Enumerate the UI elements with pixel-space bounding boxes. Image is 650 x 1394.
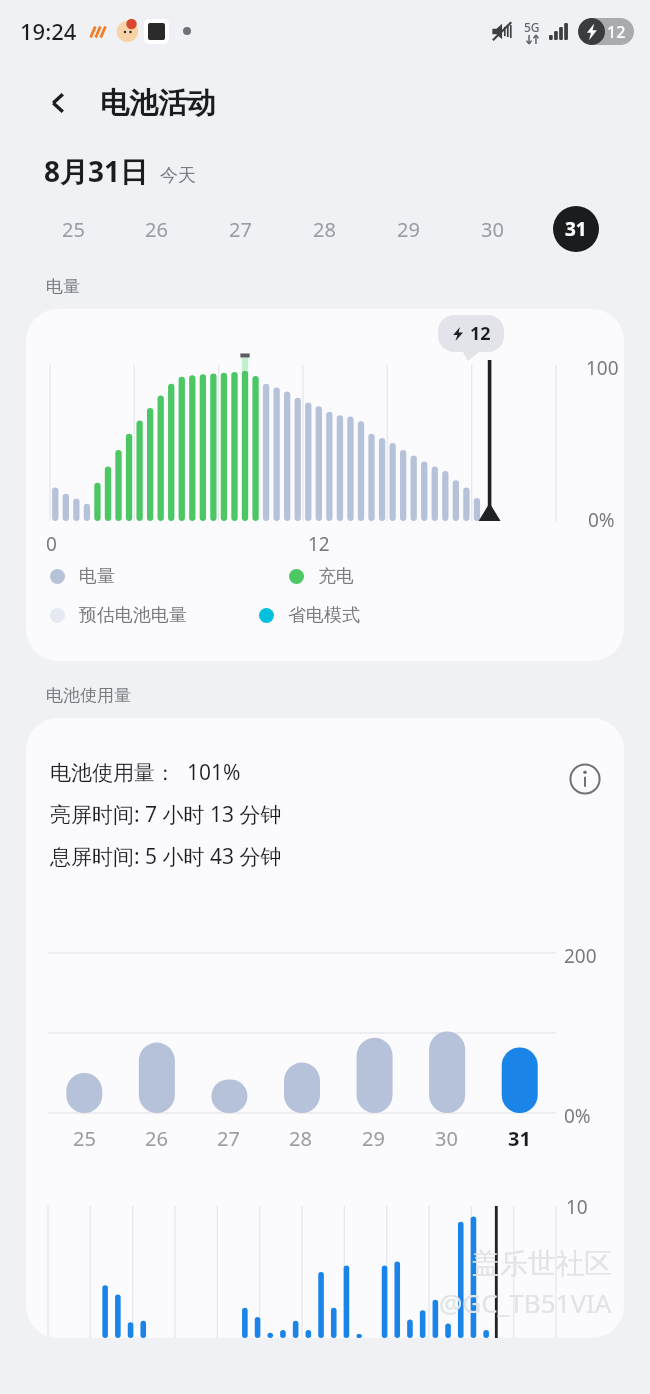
staticText: 0% [588, 507, 615, 533]
staticText: 12 [607, 21, 626, 43]
button[interactable]: 29 [366, 200, 450, 258]
button[interactable]: 30 [450, 200, 534, 258]
button[interactable]: 27 [198, 200, 282, 258]
staticText: 25 [73, 1125, 96, 1152]
staticText: 电池使用量： 101% [50, 758, 241, 787]
staticText: 12 [470, 321, 491, 346]
staticText: 0 [46, 531, 57, 557]
staticText: 31 [508, 1125, 531, 1152]
staticText: 25 [62, 216, 85, 243]
staticText: 今天 [160, 164, 196, 187]
staticText: 27 [217, 1125, 240, 1152]
staticText: 30 [481, 216, 504, 243]
staticText: 盖乐世社区 [472, 1246, 612, 1281]
staticText: 30 [435, 1125, 458, 1152]
staticText: 27 [229, 216, 252, 243]
staticText: 26 [145, 216, 168, 243]
staticText: 29 [362, 1125, 385, 1152]
staticText: 31 [565, 216, 587, 242]
button[interactable]: 31 [534, 200, 618, 258]
button[interactable]: 信息 [564, 758, 606, 800]
button[interactable]: 电池使用量： 101% [26, 718, 624, 1338]
staticText: 28 [289, 1125, 312, 1152]
staticText: 8月31日 [44, 152, 149, 190]
staticText: 充电 [318, 565, 354, 588]
staticText: 0% [564, 1103, 591, 1129]
staticText: 12 [308, 531, 330, 557]
staticText: 息屏时间: 5 小时 43 分钟 [50, 842, 282, 871]
staticText: 预估电池电量 [79, 604, 187, 627]
staticText: 10 [566, 1194, 588, 1220]
staticText: 200 [564, 943, 597, 969]
staticText: 29 [397, 216, 420, 243]
staticText: 省电模式 [288, 604, 360, 627]
staticText: 19:24 [20, 16, 77, 46]
staticText: 亮屏时间: 7 小时 13 分钟 [50, 800, 282, 829]
button[interactable]: 返回 [38, 83, 78, 123]
button[interactable]: 25 [32, 200, 115, 258]
staticText: 5G [524, 19, 540, 35]
staticText: 电量 [79, 565, 115, 588]
staticText: 电池使用量 [46, 685, 131, 706]
button[interactable]: 28 [282, 200, 366, 258]
staticText: 26 [145, 1125, 168, 1152]
staticText: 电池活动 [100, 85, 216, 122]
button[interactable]: 26 [115, 200, 198, 258]
staticText: @GC_TB51VIA [439, 1285, 612, 1320]
staticText: 电量 [46, 276, 80, 297]
staticText: 28 [313, 216, 336, 243]
button[interactable]: 100 [26, 309, 624, 661]
staticText: 100 [586, 355, 619, 381]
